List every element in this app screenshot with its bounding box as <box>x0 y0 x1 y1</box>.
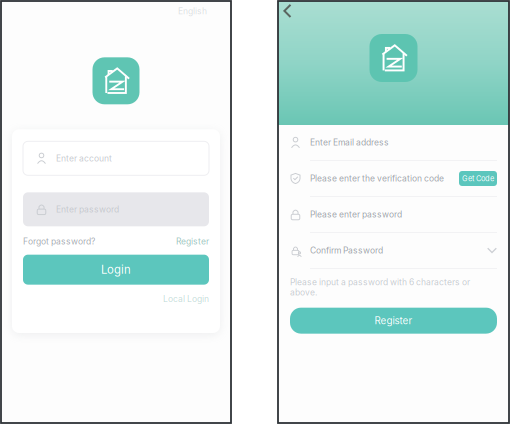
button[interactable]: Enter account <box>23 141 209 175</box>
button[interactable]: Register <box>290 308 497 334</box>
staticText: Enter Email address <box>310 137 389 148</box>
button[interactable]: Enter Email address <box>290 125 497 161</box>
button[interactable]: Please enter password <box>290 197 497 233</box>
button[interactable]: English <box>173 2 212 20</box>
staticText: Register <box>374 315 412 327</box>
button[interactable]: Local Login <box>163 291 209 307</box>
staticText: Forgot password? <box>23 236 95 247</box>
staticText: Please enter the verification code <box>310 173 444 184</box>
staticText: Confirm Password <box>310 245 383 256</box>
button[interactable]: Enter password <box>23 192 209 226</box>
staticText: Login <box>101 263 131 276</box>
button[interactable]: Please enter the verification code <box>290 161 497 197</box>
button[interactable]: Forgot password? <box>23 233 95 250</box>
button[interactable]: Back <box>278 1 301 27</box>
staticText: Enter account <box>56 153 112 163</box>
button[interactable]: Login <box>23 255 209 285</box>
button[interactable]: Register <box>176 233 209 250</box>
button[interactable]: Confirm Password <box>290 233 497 269</box>
staticText: English <box>178 6 207 16</box>
staticText: Please enter password <box>310 209 402 220</box>
staticText: Please input a password with 6 character… <box>290 277 470 298</box>
staticText: Get Code <box>462 174 494 183</box>
staticText: Register <box>176 236 209 247</box>
staticText: Enter password <box>56 204 119 214</box>
staticText: Local Login <box>163 294 209 304</box>
